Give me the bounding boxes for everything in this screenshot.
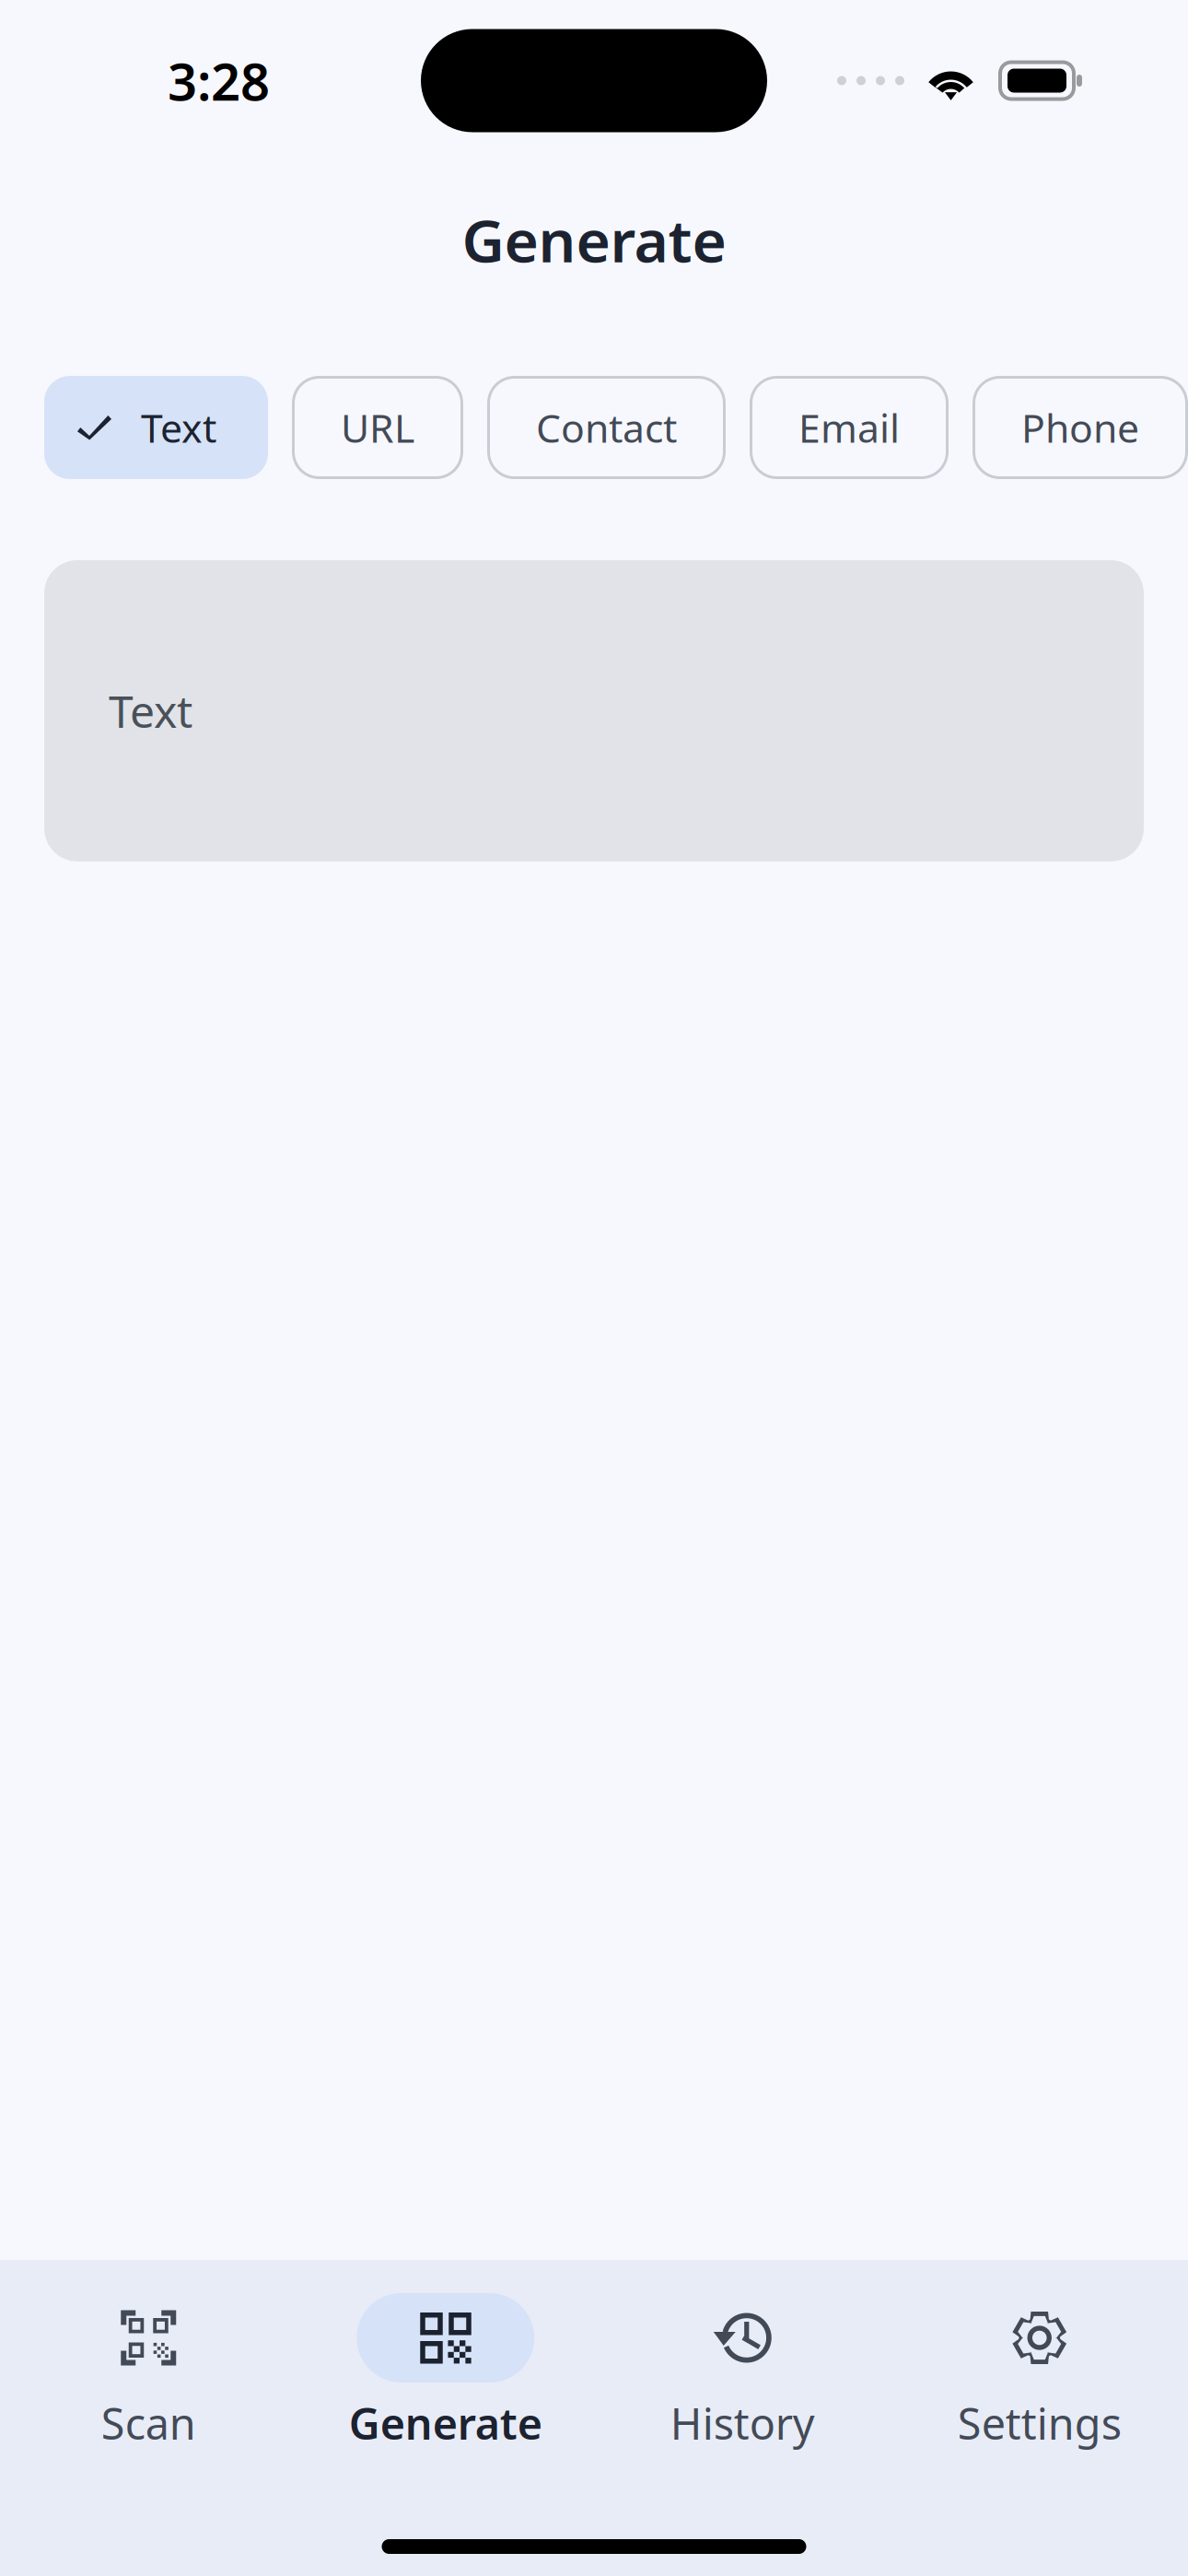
button[interactable]: URL: [292, 376, 463, 479]
staticText: Email: [798, 401, 900, 454]
button[interactable]: Contact: [487, 376, 726, 479]
staticText: 3:28: [168, 46, 270, 115]
button[interactable]: Settings: [891, 2260, 1188, 2447]
staticText: Settings: [958, 2395, 1122, 2452]
button[interactable]: Scan: [0, 2260, 297, 2447]
staticText: URL: [341, 401, 414, 454]
staticText: Text: [109, 681, 192, 740]
staticText: Generate: [462, 200, 726, 279]
button[interactable]: History: [594, 2260, 891, 2447]
button[interactable]: Phone: [973, 376, 1188, 479]
button[interactable]: Email: [750, 376, 949, 479]
button[interactable]: Text: [44, 560, 1144, 861]
staticText: Generate: [349, 2395, 542, 2452]
staticText: Scan: [101, 2395, 196, 2452]
button[interactable]: Generate: [297, 2260, 594, 2447]
staticText: Text: [141, 401, 216, 454]
staticText: Contact: [536, 401, 677, 454]
staticText: History: [670, 2395, 815, 2452]
button[interactable]: Text: [44, 376, 268, 479]
staticText: Phone: [1021, 401, 1139, 454]
